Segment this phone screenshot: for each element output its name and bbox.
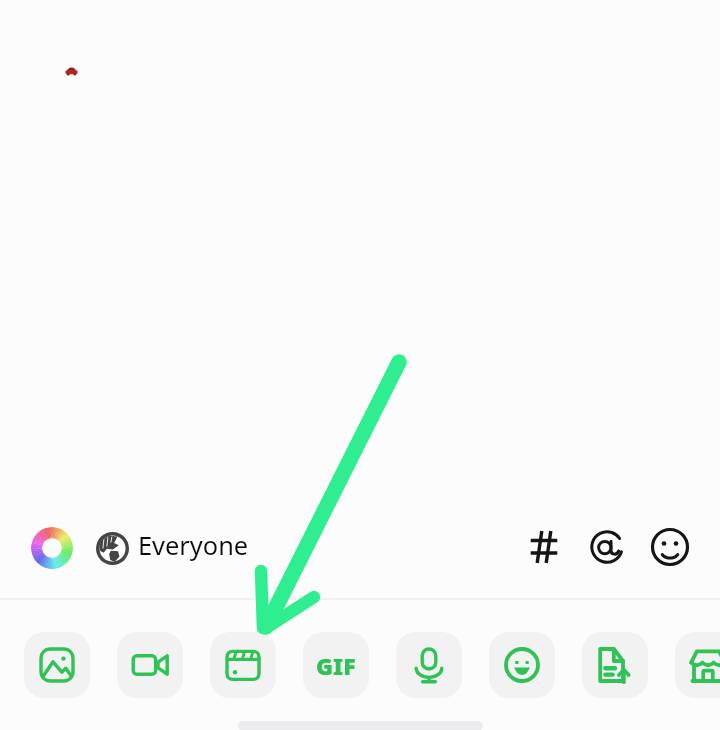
button[interactable]: Everyone: [94, 524, 255, 572]
button[interactable]: Colour picker: [31, 527, 73, 569]
button[interactable]: GIF: [303, 632, 369, 698]
button[interactable]: Avatar: [489, 632, 555, 698]
button[interactable]: Emoji: [650, 527, 690, 567]
button[interactable]: Sticker: [210, 632, 276, 698]
staticText: GIF: [316, 650, 356, 681]
button[interactable]: Photo: [24, 632, 90, 698]
button[interactable]: Audio: [396, 632, 462, 698]
button[interactable]: Shop: [675, 632, 720, 698]
button[interactable]: Mention: [587, 527, 627, 567]
button[interactable]: Document: [582, 632, 648, 698]
button[interactable]: Hashtag: [524, 527, 564, 567]
staticText: Everyone: [138, 528, 249, 563]
button[interactable]: Video: [117, 632, 183, 698]
